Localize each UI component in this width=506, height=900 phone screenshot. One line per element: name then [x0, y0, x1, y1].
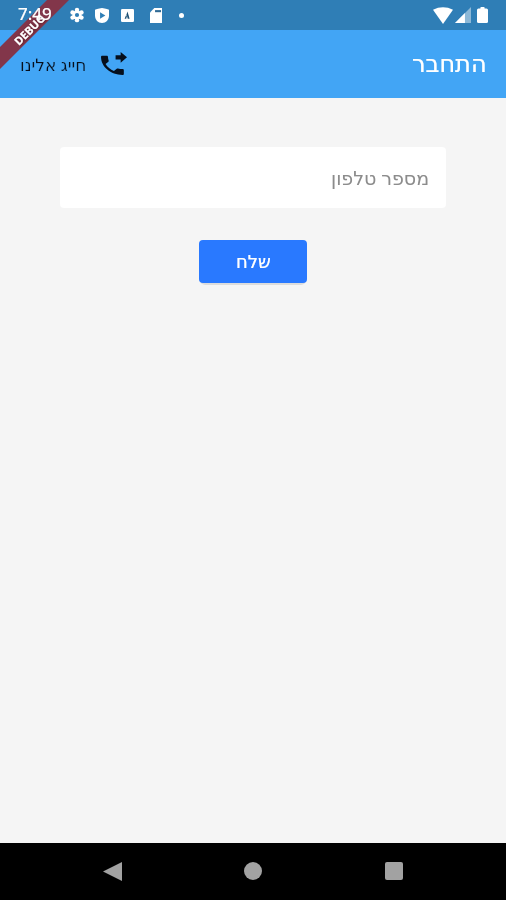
staticText: מספר טלפון [331, 165, 430, 191]
button[interactable]: Recent apps [366, 843, 422, 899]
button[interactable]: חייג אלינו [0, 41, 141, 88]
staticText: חייג אלינו [20, 53, 87, 76]
staticText: DEBUG [11, 11, 47, 47]
staticText: התחבר [412, 50, 487, 78]
staticText: שלח [236, 251, 271, 272]
button[interactable]: Home [225, 843, 281, 899]
button[interactable]: מספר טלפון [60, 147, 446, 208]
staticText: 7:49 [18, 2, 52, 25]
button[interactable]: Back [84, 843, 140, 899]
button[interactable]: שלח [199, 240, 307, 283]
